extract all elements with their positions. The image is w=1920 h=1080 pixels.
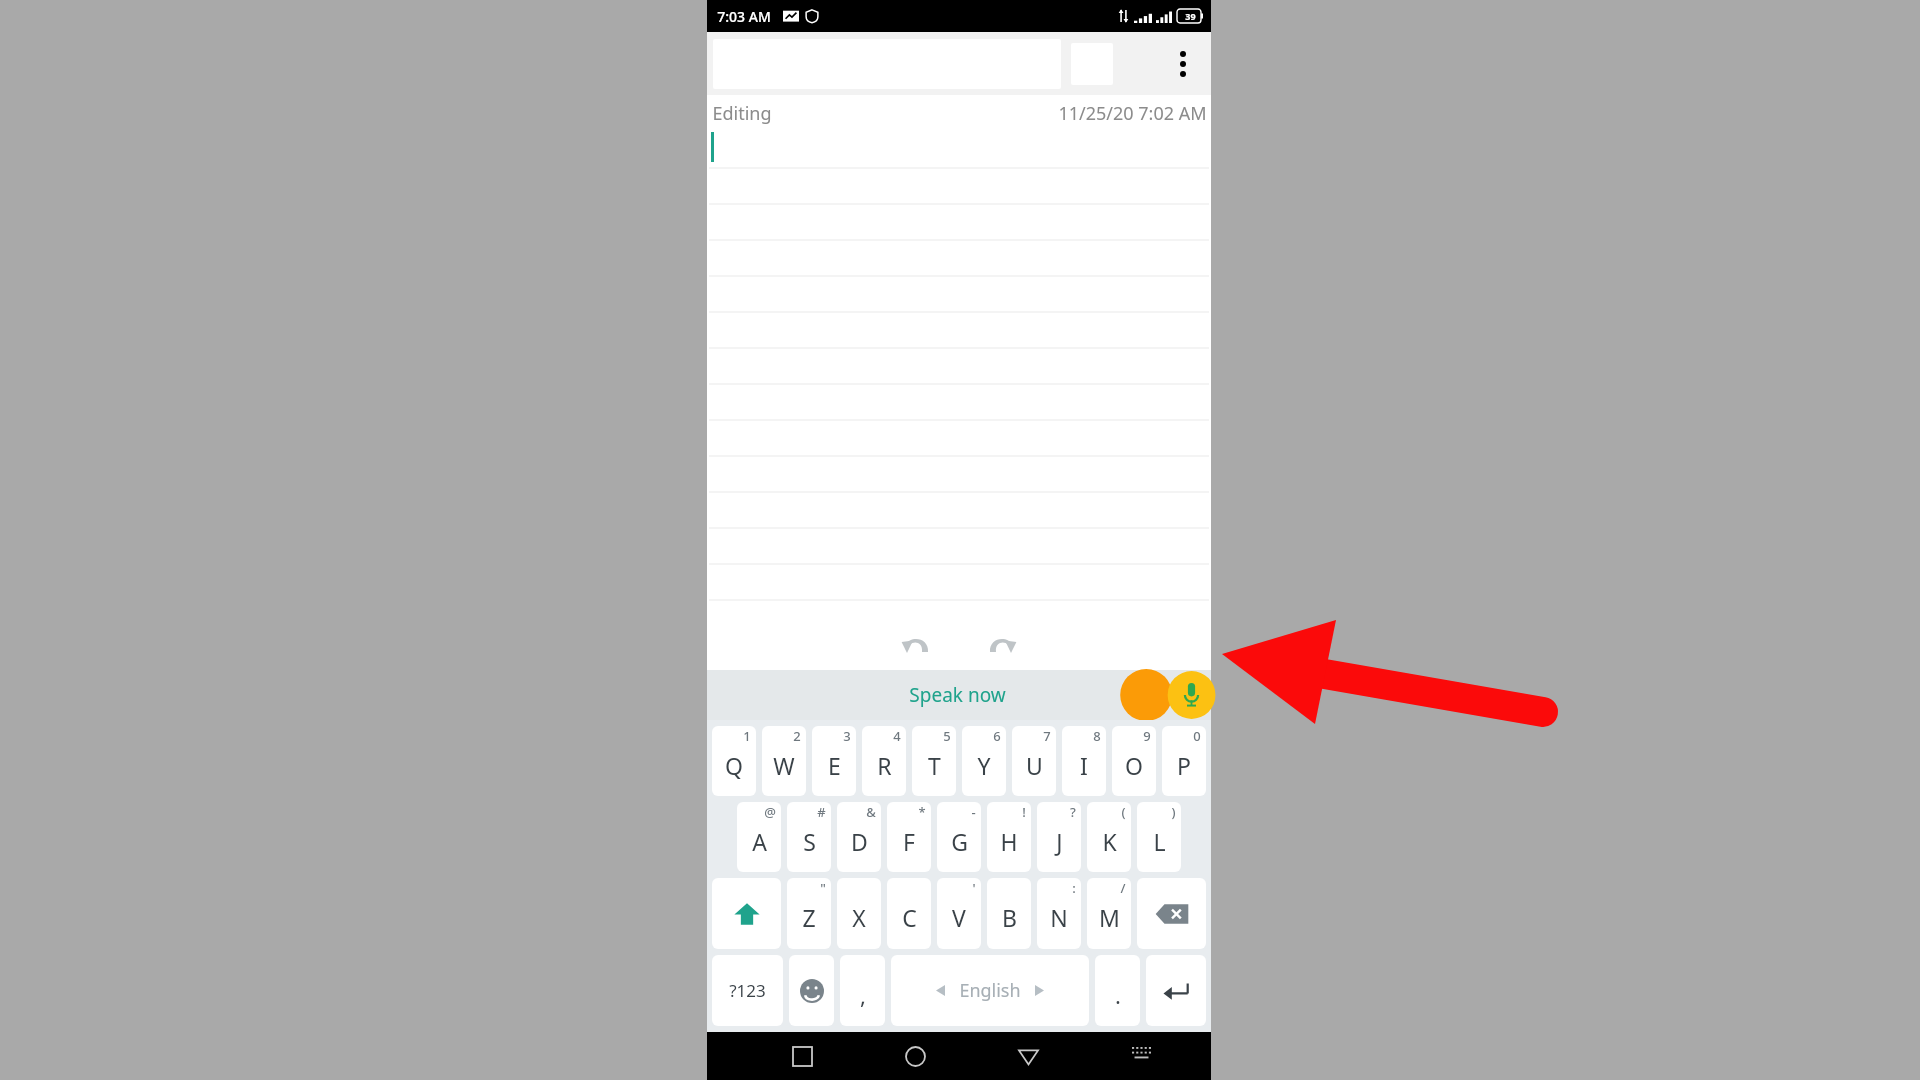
button[interactable]: H (987, 802, 1031, 872)
button[interactable]: Emoji (789, 955, 834, 1026)
button[interactable]: , (840, 955, 885, 1026)
staticText: ( (1121, 803, 1126, 821)
button[interactable]: O (1112, 726, 1156, 796)
button[interactable]: P (1162, 726, 1206, 796)
button[interactable]: X (837, 878, 881, 949)
button[interactable]: I (1062, 726, 1106, 796)
staticText: English (959, 978, 1021, 1003)
button[interactable]: Redo (972, 620, 1032, 670)
staticText: X (852, 902, 866, 933)
staticText: F (903, 826, 915, 857)
staticText: 3 (843, 727, 851, 745)
button[interactable]: V (937, 878, 981, 949)
staticText: 9 (1143, 727, 1151, 745)
staticText: & (866, 803, 876, 821)
button[interactable]: L (1137, 802, 1181, 872)
button[interactable]: S (787, 802, 831, 872)
button[interactable]: Recent apps (778, 1032, 826, 1080)
button[interactable]: Speak now (707, 670, 1211, 720)
staticText: I (1080, 750, 1088, 781)
button[interactable]: E (812, 726, 856, 796)
button[interactable]: More options (1155, 32, 1211, 95)
staticText: K (1102, 826, 1117, 857)
button[interactable]: B (987, 878, 1031, 949)
button[interactable]: ?123 (712, 955, 783, 1026)
staticText: 39 (1185, 10, 1196, 22)
button[interactable]: U (1012, 726, 1056, 796)
staticText: @ (764, 803, 776, 821)
staticText: 7:03 AM (717, 7, 771, 26)
staticText: P (1177, 750, 1191, 781)
staticText: T (928, 750, 941, 781)
staticText: ! (1022, 803, 1026, 821)
staticText: G (951, 826, 968, 857)
staticText: 6 (993, 727, 1001, 745)
button[interactable]: J (1037, 802, 1081, 872)
button[interactable]: T (912, 726, 956, 796)
staticText: / (1120, 879, 1126, 897)
button[interactable]: Back (1004, 1032, 1052, 1080)
staticText: - (971, 803, 976, 821)
button[interactable]: N (1037, 878, 1081, 949)
staticText: D (851, 826, 868, 857)
staticText: # (817, 803, 826, 821)
staticText: : (1072, 879, 1076, 897)
staticText: " (820, 879, 826, 897)
button[interactable]: English (891, 955, 1089, 1026)
staticText: E (828, 750, 841, 781)
staticText: J (1056, 826, 1063, 857)
button[interactable]: Enter (1146, 955, 1206, 1026)
staticText: N (1050, 902, 1068, 933)
button[interactable]: K (1087, 802, 1131, 872)
button[interactable]: Hide keyboard (1117, 1032, 1165, 1080)
staticText: ) (1171, 803, 1176, 821)
staticText: L (1153, 826, 1166, 857)
staticText: M (1099, 902, 1120, 933)
staticText: A (752, 826, 767, 857)
staticText: * (918, 803, 926, 821)
staticText: 5 (943, 727, 951, 745)
staticText: , (860, 980, 866, 1010)
button[interactable]: Undo (886, 620, 946, 670)
button[interactable]: F (887, 802, 931, 872)
button[interactable]: C (887, 878, 931, 949)
staticText: 11/25/20 7:02 AM (1058, 101, 1207, 126)
staticText: B (1002, 902, 1017, 933)
staticText: 8 (1093, 727, 1101, 745)
button[interactable]: Backspace (1137, 878, 1206, 949)
staticText: U (1026, 750, 1043, 781)
button[interactable]: Q (712, 726, 756, 796)
button[interactable]: Y (962, 726, 1006, 796)
staticText: 1 (743, 727, 751, 745)
staticText: 2 (793, 727, 801, 745)
staticText: ?123 (729, 979, 766, 1002)
staticText: C (902, 902, 917, 933)
staticText: Q (725, 750, 743, 781)
button[interactable]: W (762, 726, 806, 796)
staticText: ' (972, 879, 976, 897)
button[interactable]: R (862, 726, 906, 796)
button[interactable]: A (737, 802, 781, 872)
staticText: R (877, 750, 892, 781)
staticText: V (952, 902, 966, 933)
other: Microphone, listening (1103, 670, 1211, 720)
staticText: Speak now (909, 682, 1006, 708)
button[interactable]: Shift (712, 878, 781, 949)
button[interactable]: . (1095, 955, 1140, 1026)
staticText: ? (1070, 803, 1076, 821)
staticText: 7 (1043, 727, 1051, 745)
staticText: Y (977, 750, 991, 781)
staticText: . (1115, 980, 1121, 1010)
staticText: 0 (1193, 727, 1201, 745)
button[interactable]: M (1087, 878, 1131, 949)
button[interactable]: Z (787, 878, 831, 949)
staticText: O (1125, 750, 1143, 781)
staticText: Editing (712, 101, 772, 126)
button[interactable]: D (837, 802, 881, 872)
staticText: Z (802, 902, 816, 933)
staticText: H (1000, 826, 1018, 857)
button[interactable]: Home (891, 1032, 939, 1080)
button[interactable]: G (937, 802, 981, 872)
